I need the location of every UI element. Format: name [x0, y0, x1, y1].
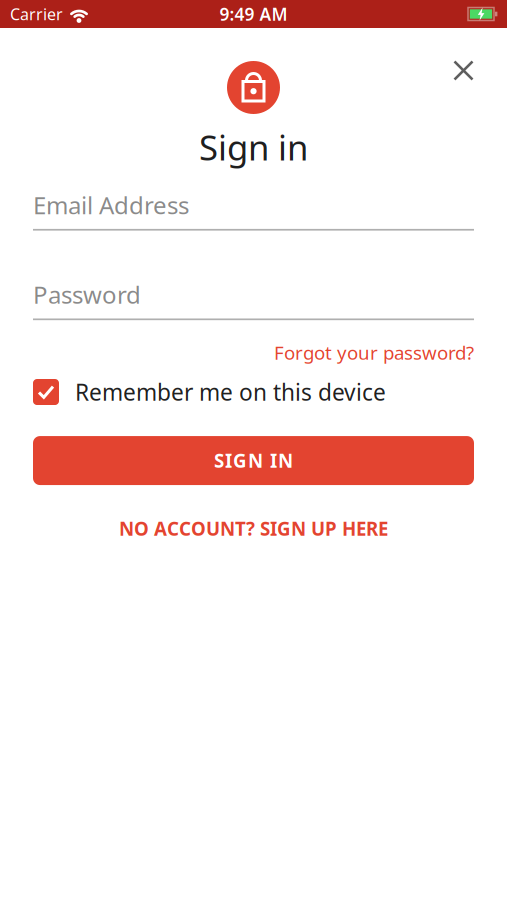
staticText: NO ACCOUNT? SIGN UP HERE — [119, 516, 388, 541]
button[interactable]: Close — [453, 60, 474, 81]
button[interactable]: Forgot your password? — [274, 340, 474, 365]
staticText: Password — [33, 279, 141, 310]
staticText: 9:49 AM — [219, 2, 287, 25]
staticText: Email Address — [33, 189, 189, 221]
staticText: Forgot your password? — [274, 340, 474, 365]
button[interactable]: NO ACCOUNT? SIGN UP HERE — [119, 516, 388, 541]
button[interactable]: Remember me on this device — [33, 377, 474, 407]
button[interactable]: SIGN IN — [33, 436, 474, 485]
staticText: SIGN IN — [214, 448, 293, 473]
staticText: Sign in — [199, 124, 308, 170]
staticText: Carrier — [10, 3, 63, 25]
staticText: Remember me on this device — [75, 377, 386, 407]
